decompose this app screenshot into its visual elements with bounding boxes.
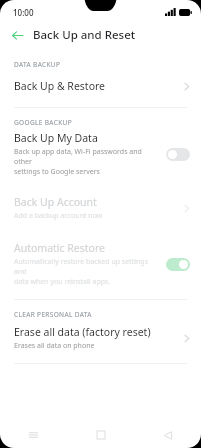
button[interactable]: Home — [67, 422, 134, 448]
button[interactable]: Automatic Restore — [0, 239, 201, 289]
staticText: Back Up My Data — [14, 131, 98, 145]
button[interactable]: Recent apps — [0, 422, 67, 448]
button[interactable]: Back — [134, 422, 201, 448]
staticText: Erase all data (factory reset) — [14, 325, 151, 339]
button[interactable]: Back Up Account — [0, 191, 201, 225]
staticText: Automatically restore backed up settings… — [14, 257, 160, 287]
staticText: Back up app data, Wi-Fi passwords and ot… — [14, 147, 160, 177]
staticText: Add a backup account now — [14, 211, 103, 221]
staticText: Back Up and Reset — [33, 27, 136, 43]
staticText: Back Up & Restore — [14, 79, 106, 93]
staticText: Erases all data on phone — [14, 341, 95, 351]
button[interactable]: On — [166, 258, 190, 271]
staticText: Back Up Account — [14, 195, 97, 209]
staticText: CLEAR PERSONAL DATA — [14, 310, 92, 319]
button[interactable]: Erase all data (factory reset) — [0, 321, 201, 355]
staticText: 10:00 — [13, 7, 34, 18]
staticText: GOOGLE BACKUP — [14, 118, 72, 127]
button[interactable]: Back Up & Restore — [0, 71, 201, 101]
button[interactable]: Back — [7, 25, 27, 45]
button[interactable]: Back Up My Data — [0, 129, 201, 179]
staticText: Automatic Restore — [14, 241, 105, 255]
staticText: DATA BACKUP — [14, 60, 61, 69]
button[interactable]: Off — [166, 148, 190, 161]
